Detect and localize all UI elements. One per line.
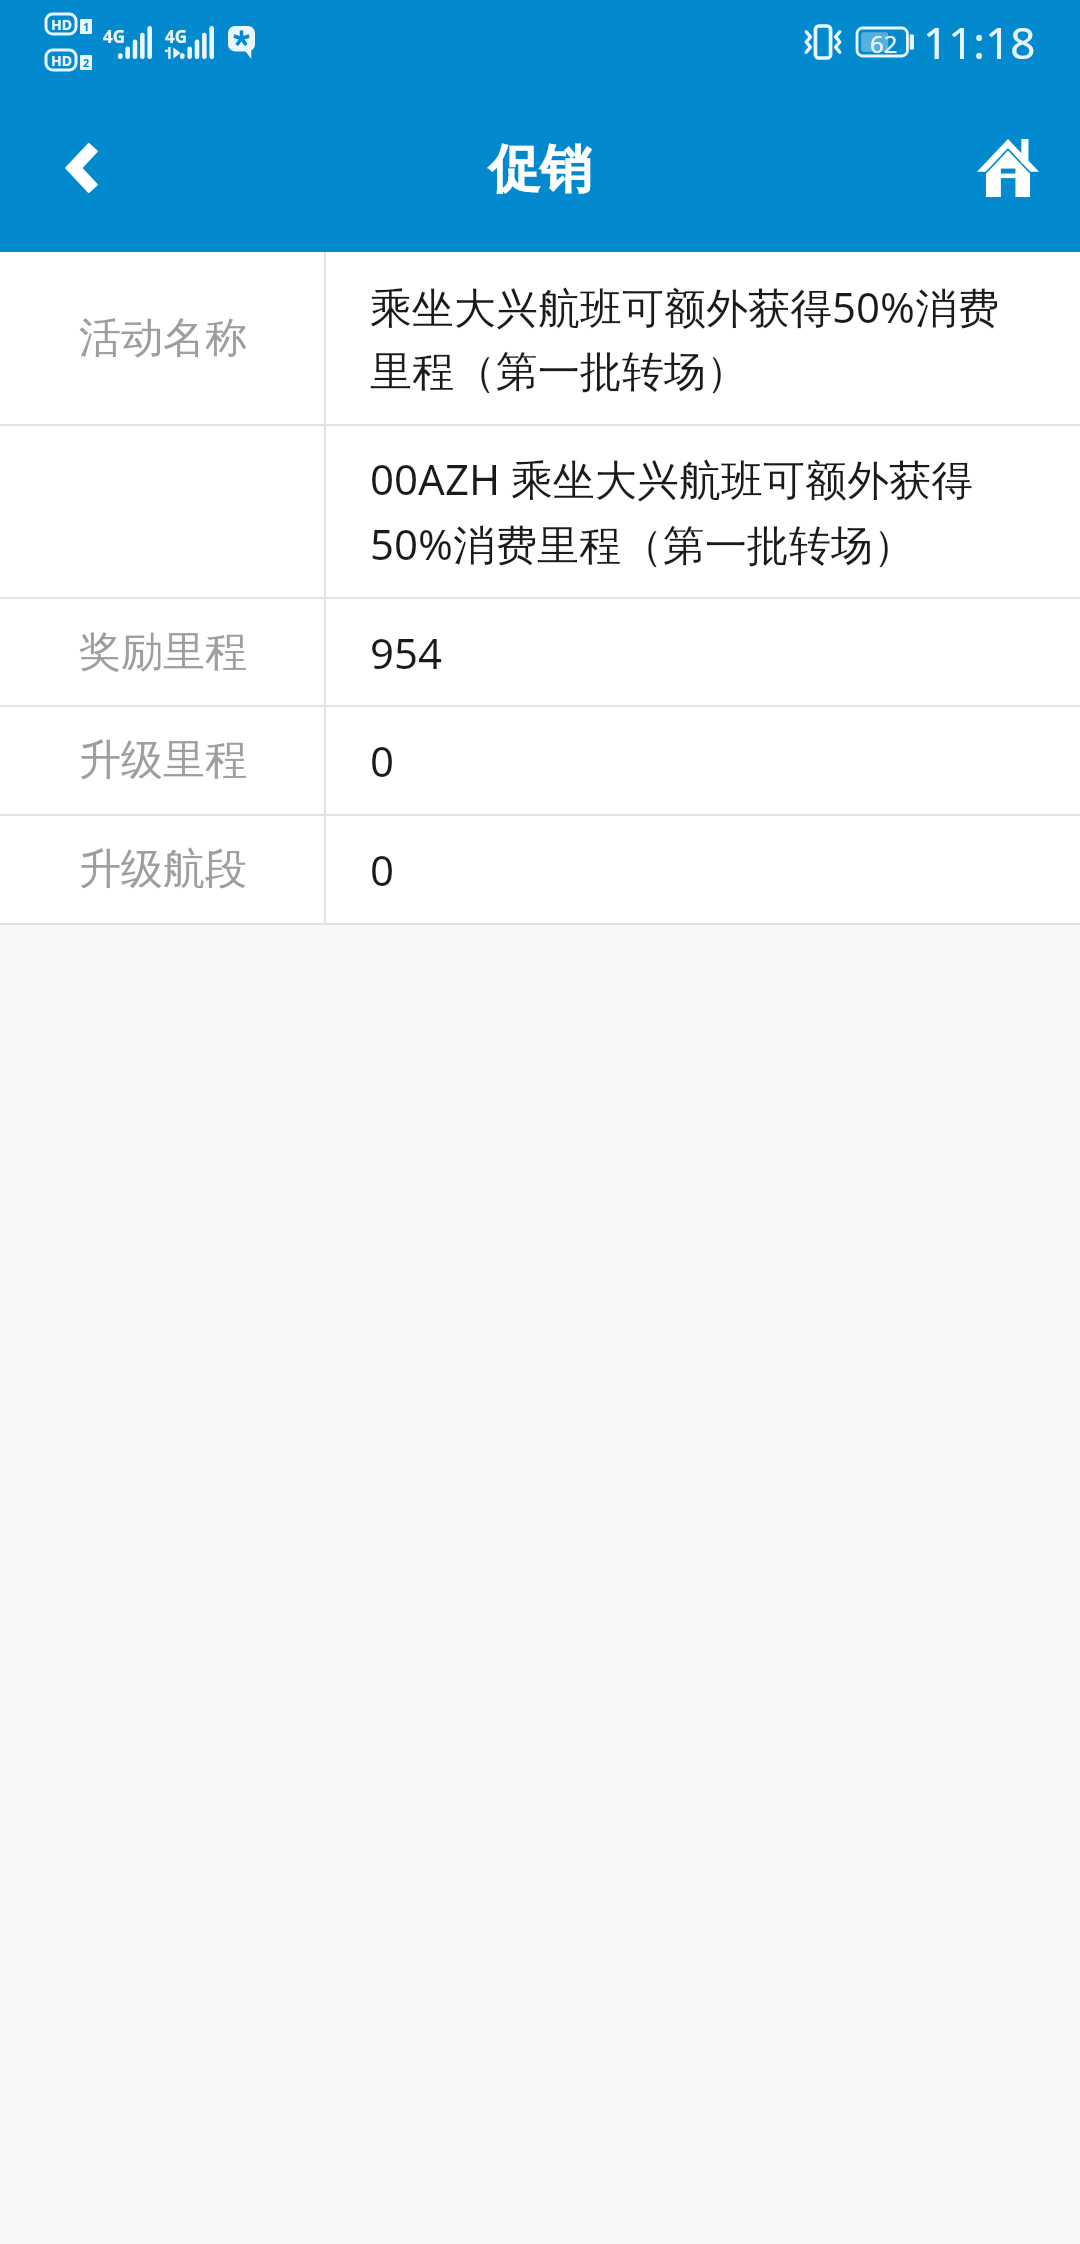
staticText: 11:18	[923, 12, 1036, 72]
staticText: 2	[83, 55, 90, 70]
staticText: 0	[370, 841, 395, 898]
button[interactable]: 活动名称	[0, 252, 1080, 424]
staticText: 升级航段	[79, 843, 247, 896]
button[interactable]: 00AZH 乘坐大兴航班可额外获得50%消费里程（第一批转场）	[0, 426, 1080, 597]
staticText: 00AZH 乘坐大兴航班可额外获得50%消费里程（第一批转场）	[370, 450, 1008, 573]
button[interactable]: Home	[936, 84, 1080, 252]
button[interactable]: 升级航段	[0, 816, 1080, 923]
staticText: 活动名称	[79, 312, 247, 365]
staticText: HD	[51, 51, 72, 70]
button[interactable]: 升级里程	[0, 707, 1080, 814]
staticText: 促销	[488, 137, 592, 203]
staticText: 1	[83, 19, 90, 34]
button[interactable]: Back	[0, 84, 162, 252]
staticText: 4G	[165, 25, 188, 48]
staticText: 954	[370, 624, 443, 681]
staticText: 升级里程	[79, 734, 247, 787]
staticText: 奖励里程	[79, 626, 247, 679]
staticText: 62	[870, 27, 898, 55]
staticText: 4G	[103, 25, 126, 48]
staticText: 0	[370, 732, 395, 789]
button[interactable]: 奖励里程	[0, 599, 1080, 705]
staticText: 乘坐大兴航班可额外获得50%消费里程（第一批转场）	[370, 278, 1008, 399]
staticText: HD	[51, 15, 72, 34]
